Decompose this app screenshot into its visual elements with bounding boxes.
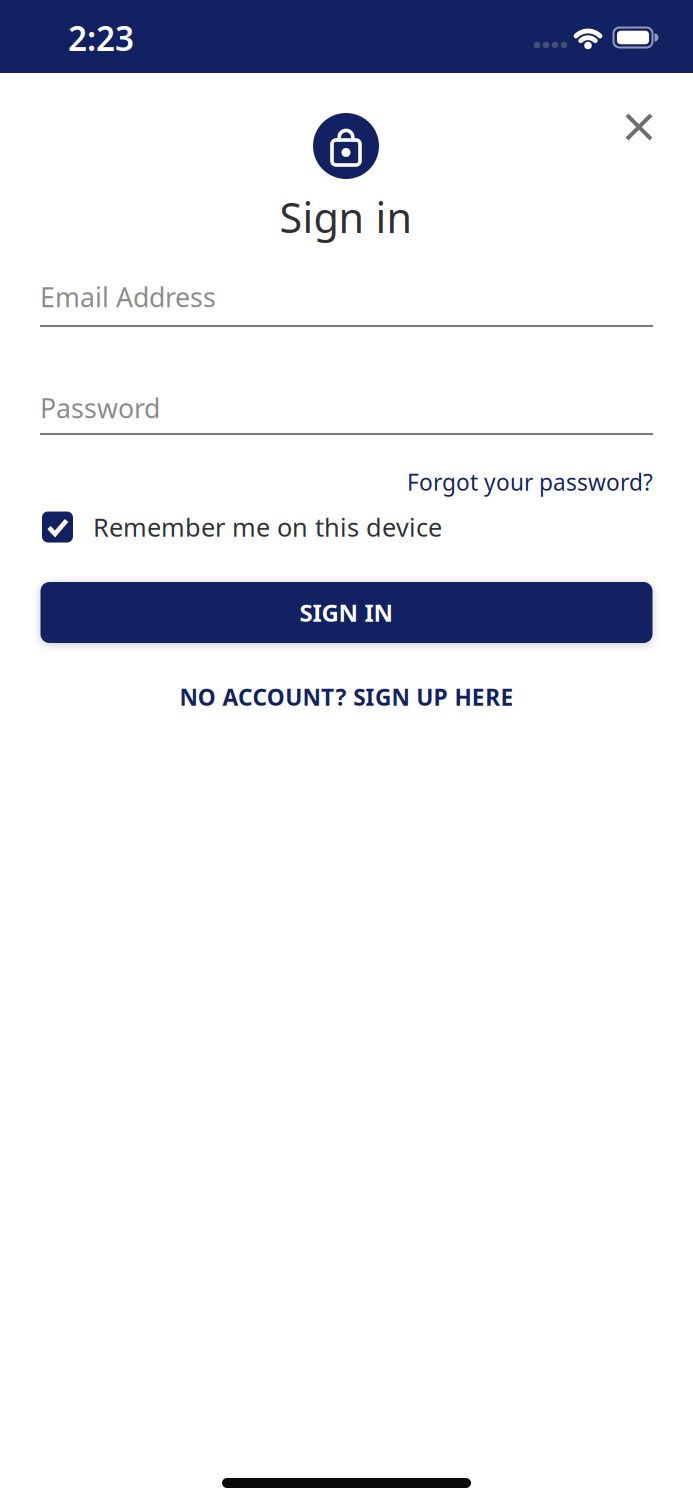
staticText: 2:23 [68, 16, 134, 60]
staticText: Forgot your password? [407, 467, 653, 497]
staticText: Remember me on this device [93, 510, 442, 544]
staticText: SIGN IN [299, 597, 393, 628]
button[interactable]: Remember me on this device [42, 510, 653, 544]
staticText: Password [40, 390, 160, 426]
staticText: Sign in [279, 190, 412, 244]
staticText: NO ACCOUNT? SIGN UP HERE [179, 682, 514, 712]
button[interactable]: Password [40, 378, 653, 438]
button[interactable]: Email Address [40, 267, 653, 327]
button[interactable]: NO ACCOUNT? SIGN UP HERE [179, 682, 514, 712]
button[interactable]: SIGN IN [40, 582, 652, 643]
staticText: Email Address [40, 279, 216, 315]
button[interactable]: Close [623, 111, 655, 143]
button[interactable]: Forgot your password? [40, 467, 653, 497]
